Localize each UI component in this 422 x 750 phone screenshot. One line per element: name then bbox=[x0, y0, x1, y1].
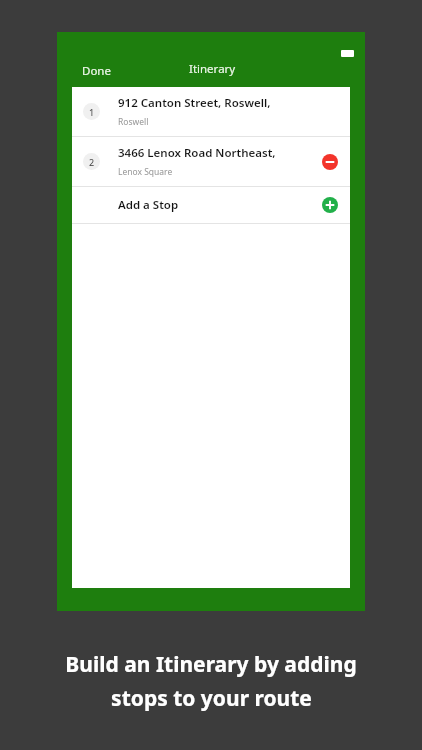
staticText: Itinerary bbox=[189, 61, 236, 77]
staticText: 2 bbox=[89, 156, 95, 168]
staticText: Build an Itinerary by adding bbox=[65, 650, 357, 679]
staticText: 3466 Lenox Road Northeast, Atlanta, G… bbox=[118, 145, 313, 161]
staticText: 1 bbox=[89, 106, 95, 118]
button[interactable]: 1 bbox=[72, 87, 350, 136]
staticText: stops to your route bbox=[111, 684, 312, 713]
button[interactable]: Done bbox=[79, 61, 114, 81]
button[interactable]: Remove stop bbox=[322, 154, 338, 170]
button[interactable]: Add a stop bbox=[322, 197, 338, 213]
staticText: Lenox Square bbox=[118, 166, 173, 178]
staticText: 912 Canton Street, Roswell, Georgia 30… bbox=[118, 95, 313, 111]
staticText: Done bbox=[82, 63, 111, 79]
staticText: Roswell bbox=[118, 116, 149, 128]
button[interactable]: Add a Stop bbox=[72, 187, 350, 223]
staticText: Add a Stop bbox=[118, 197, 179, 213]
button[interactable]: 2 bbox=[72, 137, 350, 186]
